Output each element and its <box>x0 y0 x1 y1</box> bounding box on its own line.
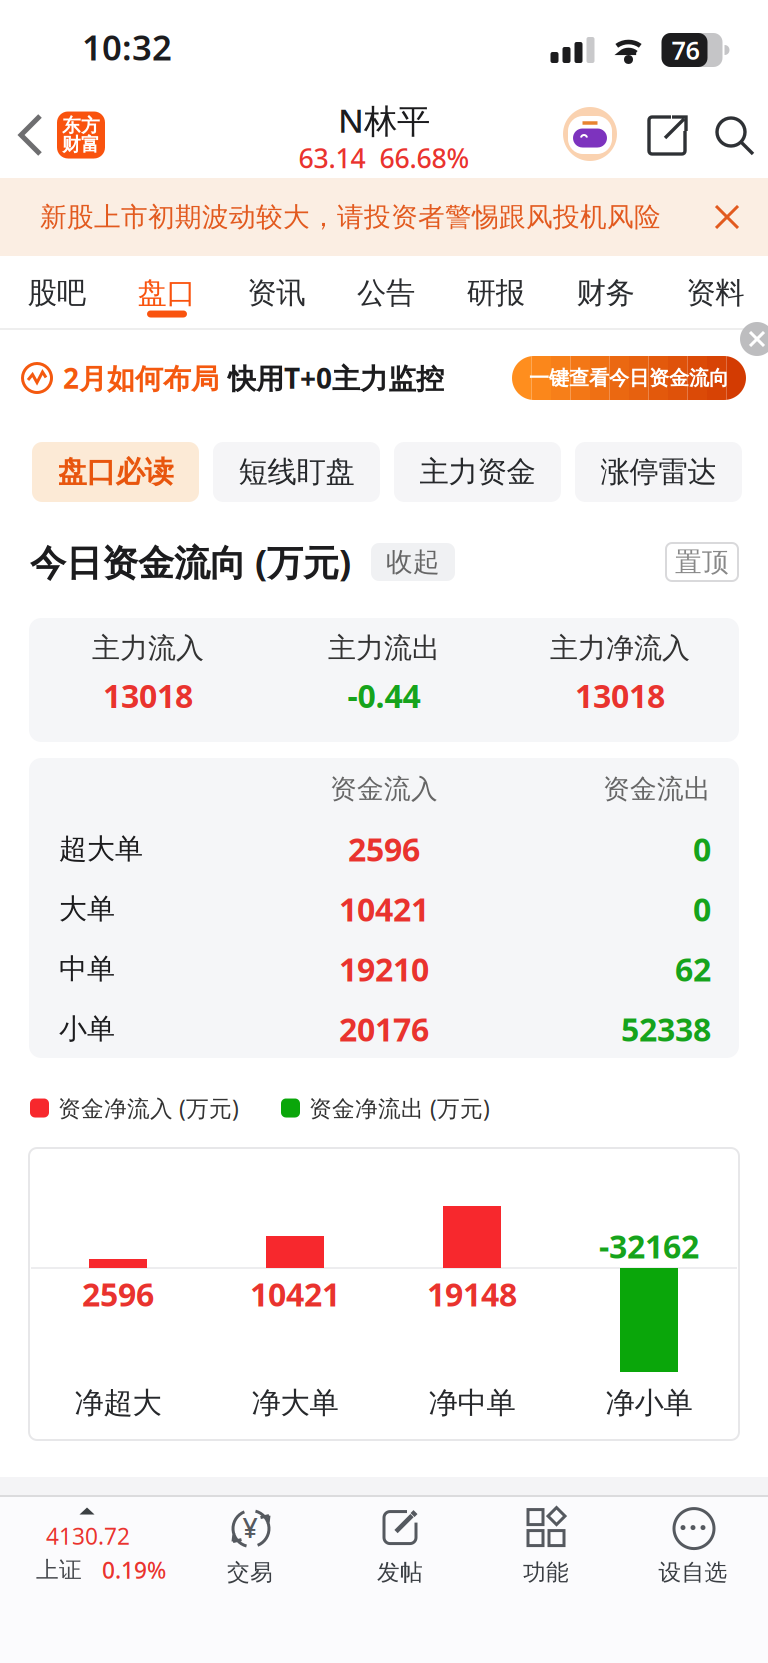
button[interactable]: 资料 <box>660 261 768 325</box>
staticText: 涨停雷达 <box>600 454 716 490</box>
staticText: 19210 <box>339 948 429 990</box>
staticText: 63.14 <box>298 140 365 176</box>
staticText: 小单 <box>59 1012 115 1046</box>
staticText: 置顶 <box>675 546 729 578</box>
staticText: -0.44 <box>347 674 420 717</box>
button[interactable]: 发帖 <box>377 1506 423 1586</box>
staticText: 资金流出 <box>603 773 711 805</box>
staticText: 19148 <box>427 1273 517 1315</box>
staticText: 新股上市初期波动较大，请投资者警惕跟风投机风险 <box>40 201 661 233</box>
staticText: -32162 <box>599 1225 699 1267</box>
staticText: 主力流入 <box>92 631 204 665</box>
button[interactable]: 股吧 <box>2 261 112 325</box>
staticText: 快用T+0主力监控 <box>228 359 444 397</box>
staticText: 13018 <box>575 674 665 717</box>
staticText: 2月如何布局 <box>63 359 219 397</box>
button[interactable]: 公告 <box>331 261 441 325</box>
staticText: ¥ <box>242 1510 257 1545</box>
staticText: 2596 <box>348 828 420 870</box>
staticText: 超大单 <box>59 832 143 866</box>
staticText: 净中单 <box>428 1385 515 1421</box>
button[interactable]: Close promo <box>740 322 768 356</box>
staticText: 资讯 <box>247 275 305 311</box>
button[interactable]: 置顶 <box>666 543 738 581</box>
staticText: 今日资金流向 (万元) <box>30 538 351 586</box>
button[interactable]: 盘口 <box>112 261 221 325</box>
staticText: 2596 <box>82 1273 154 1315</box>
staticText: 股吧 <box>28 275 86 311</box>
staticText: 0 <box>693 888 711 930</box>
staticText: 净大单 <box>251 1385 338 1421</box>
staticText: 主力资金 <box>419 454 535 490</box>
button[interactable]: 短线盯盘 <box>213 442 380 502</box>
button[interactable]: AI 助手 <box>563 107 617 161</box>
staticText: 资金流入 <box>330 773 438 805</box>
staticText: N林平 <box>338 98 430 142</box>
staticText: 13018 <box>103 674 193 717</box>
button[interactable]: 功能 <box>523 1506 569 1586</box>
button[interactable]: Search <box>711 112 757 158</box>
staticText: 大单 <box>59 892 115 926</box>
staticText: 一键查看今日资金流向 <box>529 366 729 390</box>
staticText: 52338 <box>621 1008 711 1050</box>
staticText: 中单 <box>59 952 115 986</box>
staticText: 20176 <box>339 1008 429 1050</box>
staticText: 设自选 <box>658 1559 727 1586</box>
staticText: 东方 <box>62 114 100 137</box>
button[interactable]: 财务 <box>551 261 660 325</box>
staticText: 10:32 <box>82 24 172 70</box>
staticText: 资料 <box>686 275 744 311</box>
button[interactable]: Back <box>16 112 46 158</box>
staticText: 收起 <box>386 546 440 578</box>
button[interactable]: 涨停雷达 <box>575 442 742 502</box>
button[interactable]: 盘口必读 <box>32 442 199 502</box>
staticText: 财务 <box>576 275 634 311</box>
staticText: 公告 <box>357 275 415 311</box>
button[interactable]: 一键查看今日资金流向 <box>512 356 746 400</box>
button[interactable]: 收起 <box>371 543 455 581</box>
button[interactable]: Close <box>710 200 744 234</box>
staticText: 盘口 <box>138 275 196 311</box>
staticText: 76 <box>671 33 699 67</box>
button[interactable]: 设自选 <box>658 1506 727 1586</box>
staticText: 发帖 <box>377 1559 423 1586</box>
staticText: 62 <box>675 948 711 990</box>
staticText: 上证 <box>36 1556 82 1584</box>
staticText: 财富 <box>62 133 100 156</box>
staticText: 净超大 <box>74 1385 161 1421</box>
staticText: 主力净流入 <box>550 631 690 665</box>
staticText: 10421 <box>250 1273 340 1315</box>
staticText: 10421 <box>339 888 429 930</box>
staticText: 0.19% <box>102 1555 166 1585</box>
staticText: 盘口必读 <box>57 454 173 490</box>
staticText: 短线盯盘 <box>238 454 354 490</box>
button[interactable]: 交易 <box>227 1506 273 1586</box>
button[interactable]: 主力资金 <box>394 442 561 502</box>
staticText: 功能 <box>523 1559 569 1586</box>
staticText: 4130.72 <box>46 1521 130 1551</box>
staticText: 净小单 <box>605 1385 692 1421</box>
button[interactable]: 研报 <box>441 261 551 325</box>
staticText: 资金净流出 (万元) <box>309 1093 490 1123</box>
button[interactable]: Share <box>641 110 691 160</box>
staticText: 66.68% <box>379 140 469 176</box>
staticText: 主力流出 <box>328 631 440 665</box>
button[interactable]: 上证指数 <box>16 1501 192 1587</box>
button[interactable]: 资讯 <box>221 261 331 325</box>
staticText: 研报 <box>467 275 525 311</box>
button[interactable]: 东方财富 <box>57 111 105 158</box>
staticText: 交易 <box>227 1559 273 1586</box>
staticText: 资金净流入 (万元) <box>58 1093 239 1123</box>
staticText: 0 <box>693 828 711 870</box>
